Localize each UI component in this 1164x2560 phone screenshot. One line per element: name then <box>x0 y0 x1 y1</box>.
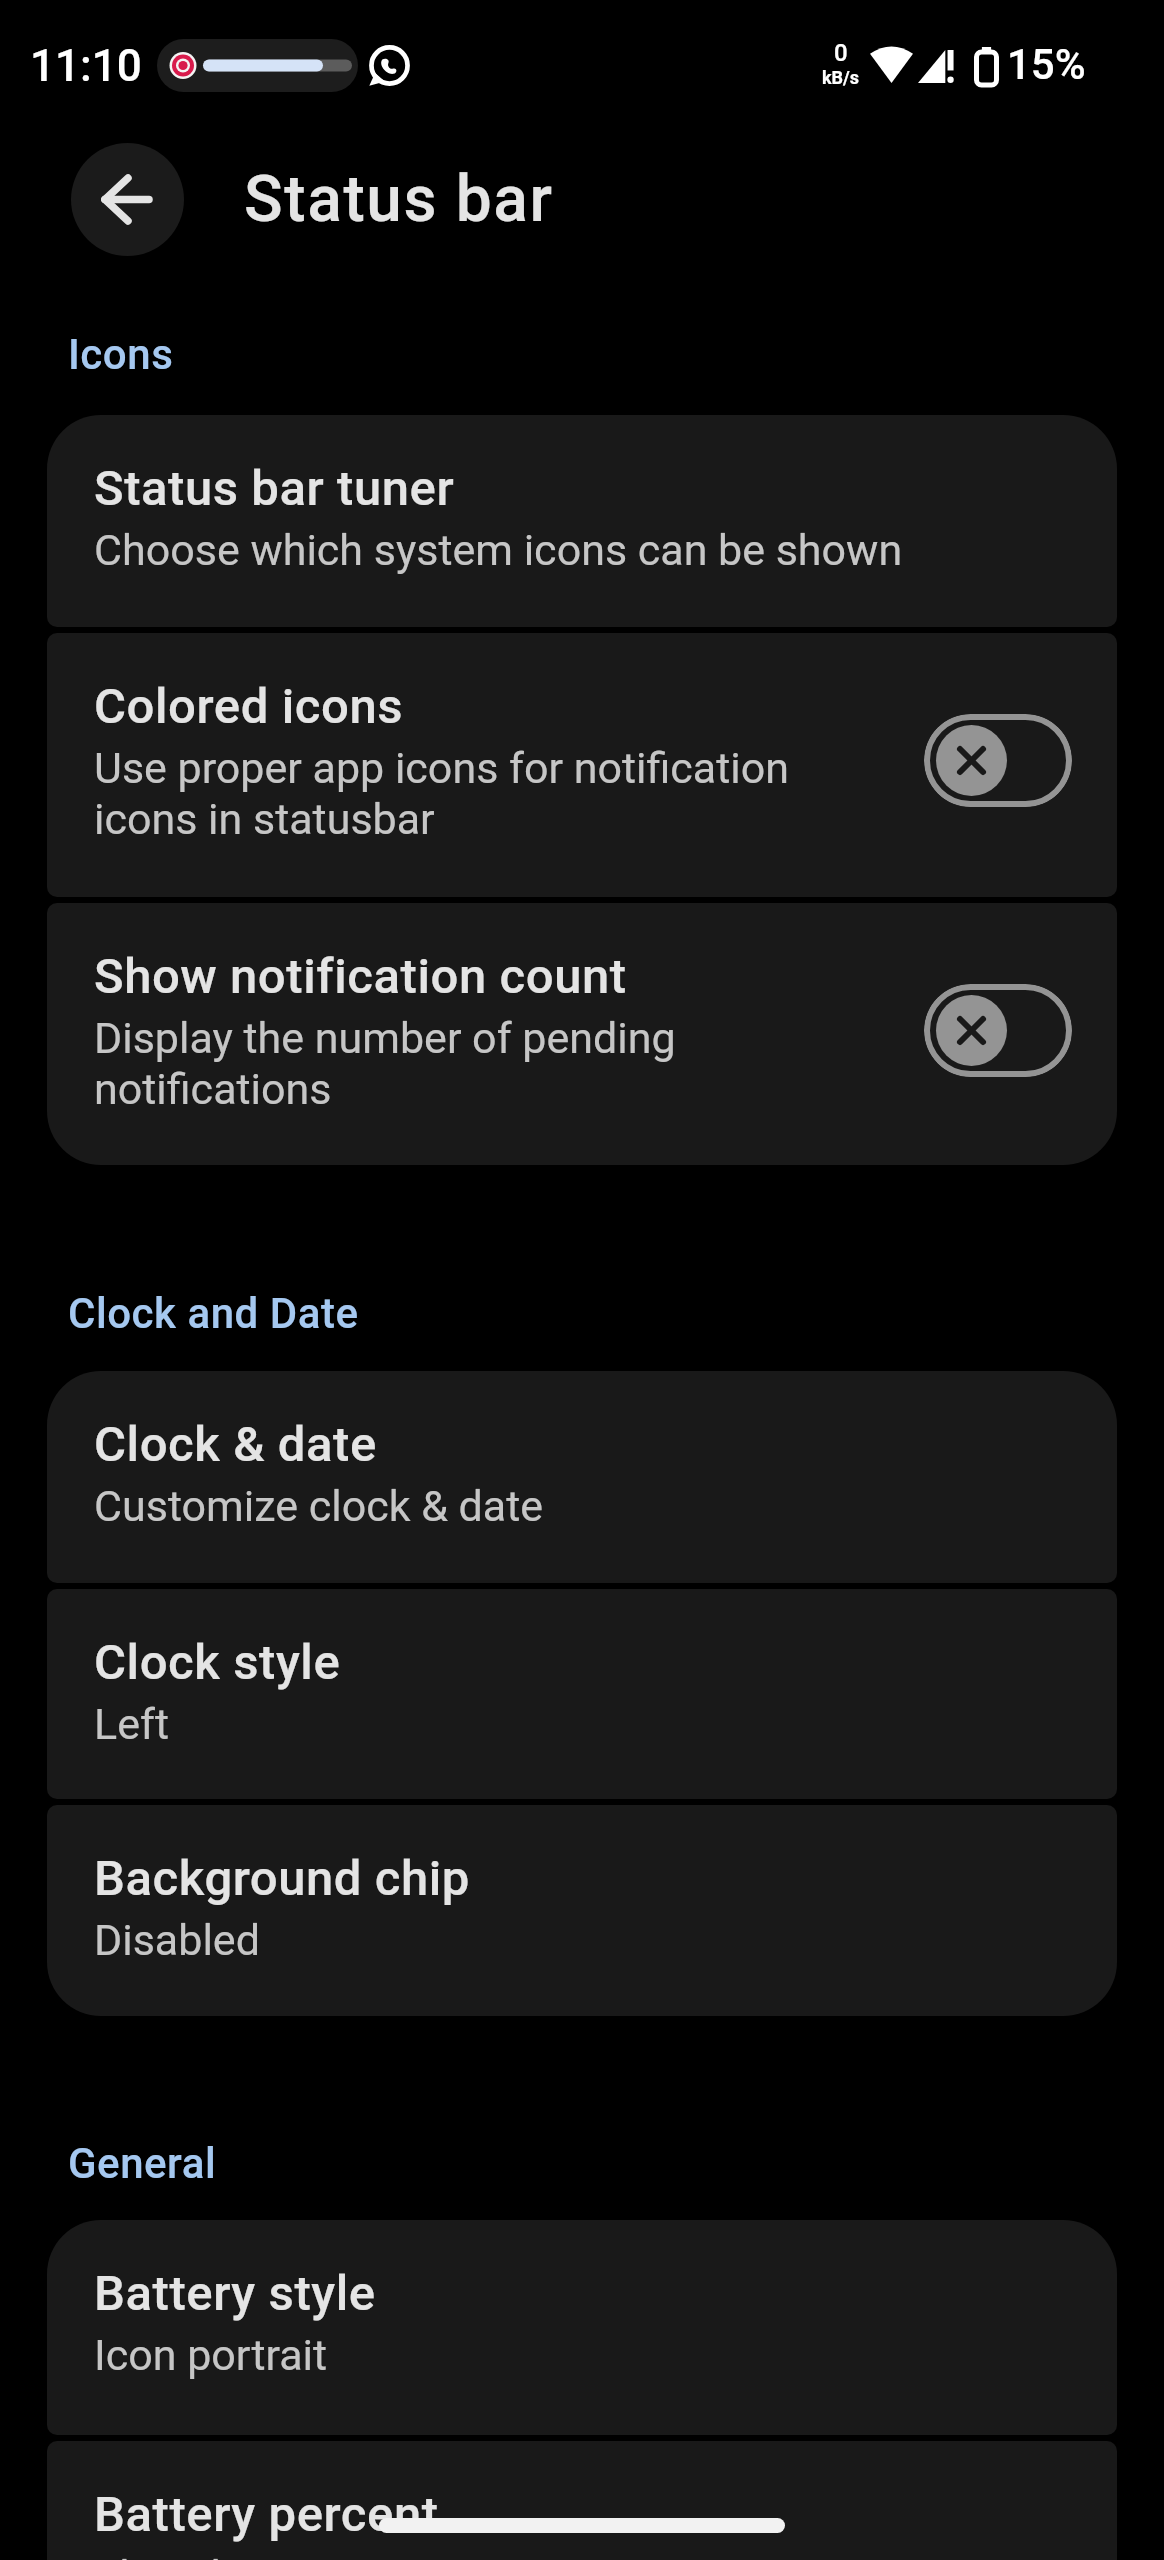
staticText: Icons <box>68 330 174 379</box>
staticText: 11:10 <box>30 40 142 92</box>
button[interactable]: Colored icons <box>47 633 1117 897</box>
staticText: Display the number of pending notificati… <box>94 1013 867 1115</box>
staticText: Left <box>94 1699 169 1749</box>
button[interactable]: Status bar tuner <box>47 415 1117 627</box>
staticText: Battery style <box>94 2265 376 2322</box>
staticText: Clock and Date <box>68 1289 359 1338</box>
staticText: Disabled <box>94 1915 260 1965</box>
staticText: Clock style <box>94 1634 341 1691</box>
staticText: Show battery percentage <box>94 2551 570 2560</box>
button[interactable]: Toggle, off <box>924 984 1072 1077</box>
button[interactable]: Show notification count <box>47 903 1117 1165</box>
button[interactable]: Background chip <box>47 1805 1117 2016</box>
staticText: Customize clock & date <box>94 1481 544 1531</box>
staticText: Choose which system icons can be shown <box>94 525 903 575</box>
staticText: Show notification count <box>94 948 627 1005</box>
staticText: General <box>68 2139 217 2188</box>
staticText: kB/s <box>822 67 860 88</box>
staticText: Status bar tuner <box>94 460 455 517</box>
button[interactable]: Toggle, off <box>924 714 1072 807</box>
staticText: Background chip <box>94 1850 470 1907</box>
staticText: Clock & date <box>94 1416 377 1473</box>
button[interactable]: Clock style <box>47 1589 1117 1799</box>
button[interactable]: Back <box>71 143 184 256</box>
staticText: Battery percent <box>94 2486 439 2543</box>
staticText: 0 <box>834 39 848 67</box>
button[interactable]: Battery style <box>47 2220 1117 2435</box>
staticText: Icon portrait <box>94 2330 328 2380</box>
staticText: Use proper app icons for notification ic… <box>94 743 867 845</box>
button[interactable]: Battery percent <box>47 2441 1117 2560</box>
staticText: 15% <box>1007 40 1086 89</box>
staticText: Colored icons <box>94 678 404 735</box>
button[interactable]: Clock & date <box>47 1371 1117 1583</box>
staticText: Status bar <box>244 162 554 237</box>
